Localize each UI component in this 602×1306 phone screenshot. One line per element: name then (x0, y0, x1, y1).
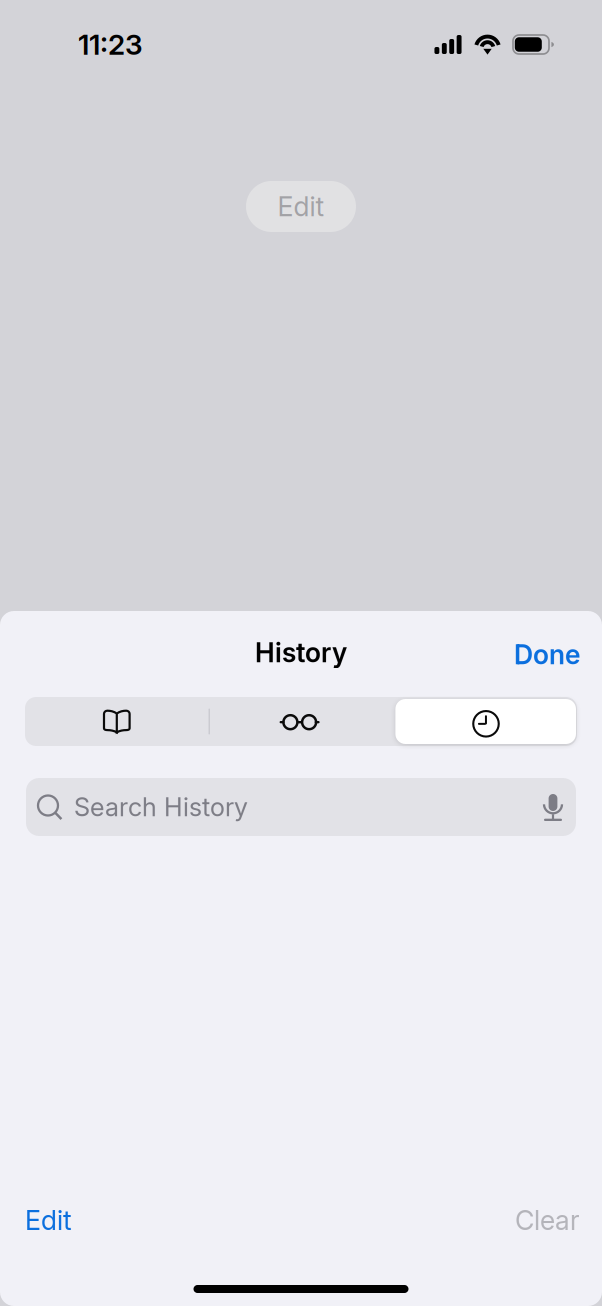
button[interactable]: Edit (246, 181, 356, 232)
staticText: Search History (74, 792, 248, 822)
button[interactable]: Edit (13, 1191, 84, 1249)
staticText: Edit (25, 1204, 72, 1236)
staticText: Edit (277, 191, 324, 222)
button[interactable]: History (393, 697, 577, 746)
button[interactable]: Clear (503, 1191, 592, 1249)
button[interactable]: Done (500, 625, 594, 680)
button[interactable]: Bookmarks (25, 697, 209, 746)
button[interactable]: Reading List (210, 697, 393, 746)
staticText: History (255, 637, 347, 668)
staticText: Clear (515, 1204, 580, 1236)
staticText: Done (514, 639, 580, 670)
button[interactable]: Voice Search (535, 781, 571, 832)
staticText: 11:23 (78, 28, 143, 61)
